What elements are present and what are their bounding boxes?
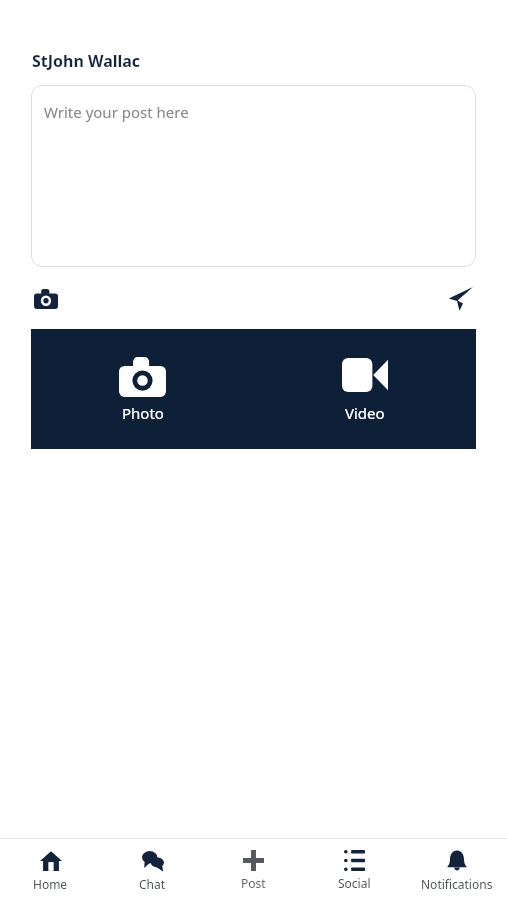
- button[interactable]: Add photo: [31, 283, 61, 313]
- button[interactable]: Social: [304, 839, 405, 900]
- staticText: Social: [338, 875, 371, 891]
- button[interactable]: Photo: [101, 349, 184, 429]
- button[interactable]: Send post: [444, 282, 476, 314]
- staticText: Video: [345, 403, 385, 423]
- button[interactable]: Home: [0, 839, 101, 900]
- staticText: Notifications: [421, 876, 493, 892]
- button[interactable]: Notifications: [406, 839, 507, 900]
- button[interactable]: Chat: [102, 839, 203, 900]
- staticText: Photo: [122, 403, 164, 423]
- staticText: Home: [33, 876, 68, 892]
- staticText: Chat: [139, 876, 166, 892]
- staticText: StJohn Wallac: [32, 50, 141, 72]
- button[interactable]: Post: [203, 839, 304, 900]
- button[interactable]: Video: [324, 349, 406, 429]
- staticText: Post: [241, 875, 266, 891]
- staticText: Write your post here: [44, 102, 189, 122]
- button[interactable]: Write your post here: [31, 85, 476, 267]
